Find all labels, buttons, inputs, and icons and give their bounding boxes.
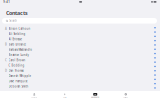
staticText: Contacts [6,9,28,16]
button[interactable] [0,73,150,79]
staticText: D [5,69,7,73]
staticText: Dan Thomas [8,69,23,73]
button[interactable]: C [0,58,150,63]
staticText: C [5,59,7,62]
button[interactable]: Keyboard [80,91,110,100]
staticText: A [5,27,7,31]
staticText: Carol Brown [8,59,25,62]
staticText: Alison Calhoun [8,27,30,31]
staticText: Ali Stribling [8,32,25,36]
staticText: Dave Hartquist [8,80,27,83]
staticText: C Bedding [8,64,24,67]
staticText: Deborah Smith [8,85,28,88]
button[interactable] [0,37,150,42]
button[interactable] [0,47,150,52]
button[interactable] [0,52,150,58]
button[interactable]: Contacts [19,91,49,100]
staticText: Danesh Whipple [8,74,31,78]
button[interactable]: Activity [49,91,80,100]
button[interactable]: A [0,26,150,31]
staticText: B [5,43,7,46]
button[interactable] [0,63,150,68]
staticText: Keyboard [91,96,99,98]
staticText: Contacts [31,96,37,98]
staticText: Settings [123,96,128,98]
staticText: Beatrice Lundy [8,53,28,57]
button[interactable]: D [0,68,150,73]
staticText: Al Entrasse [8,38,22,41]
button[interactable]: B [0,42,150,47]
staticText: Barbara Mastrandle [8,48,32,52]
staticText: 9:41 [3,0,10,4]
staticText: Search [9,19,17,22]
button[interactable] [0,79,150,84]
staticText: Activity [63,96,67,98]
staticText: Barb Entrance [8,43,26,46]
button[interactable] [0,31,150,37]
button[interactable] [0,84,150,89]
button[interactable]: Search [2,18,157,24]
button[interactable]: Settings [110,91,141,100]
